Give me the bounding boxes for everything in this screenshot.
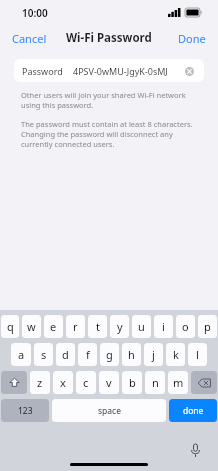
- button[interactable]: s: [34, 343, 53, 366]
- staticText: v: [106, 375, 112, 390]
- button[interactable]: q: [1, 315, 19, 338]
- button[interactable]: Cancel: [0, 27, 59, 50]
- staticText: g: [106, 347, 113, 362]
- button[interactable]: t: [88, 315, 107, 338]
- button[interactable]: m: [168, 371, 188, 394]
- staticText: 10:00: [22, 6, 48, 20]
- staticText: j: [152, 347, 155, 362]
- staticText: done: [183, 405, 204, 417]
- button[interactable]: c: [76, 371, 96, 394]
- button[interactable]: w: [22, 315, 41, 338]
- button[interactable]: o: [176, 315, 195, 338]
- staticText: b: [129, 375, 136, 390]
- staticText: m: [173, 375, 184, 390]
- staticText: Done: [178, 31, 206, 46]
- staticText: z: [37, 375, 43, 390]
- staticText: s: [41, 347, 47, 362]
- staticText: w: [27, 319, 36, 334]
- staticText: 123: [18, 405, 33, 417]
- staticText: i: [162, 319, 165, 334]
- button[interactable]: k: [166, 343, 185, 366]
- staticText: n: [152, 375, 159, 390]
- button[interactable]: Clear text: [182, 64, 196, 78]
- staticText: 4PSV-0wMU-JgyK-0sMJ: [73, 65, 168, 77]
- button[interactable]: y: [110, 315, 129, 338]
- staticText: x: [60, 375, 66, 390]
- staticText: t: [96, 319, 100, 334]
- staticText: The password must contain at least 8 cha…: [21, 119, 197, 149]
- staticText: Other users will join your shared Wi-Fi …: [21, 90, 197, 110]
- button[interactable]: Password: [14, 59, 204, 82]
- button[interactable]: i: [154, 315, 173, 338]
- staticText: Wi-Fi Password: [66, 30, 152, 46]
- button[interactable]: Done: [166, 27, 218, 50]
- button[interactable]: f: [78, 343, 97, 366]
- button[interactable]: Shift: [1, 371, 27, 394]
- staticText: p: [204, 319, 211, 334]
- staticText: Password: [22, 65, 63, 77]
- button[interactable]: z: [30, 371, 50, 394]
- staticText: r: [73, 319, 78, 334]
- staticText: a: [18, 347, 25, 362]
- button[interactable]: h: [122, 343, 141, 366]
- button[interactable]: Dictation: [186, 441, 204, 459]
- button[interactable]: n: [145, 371, 165, 394]
- staticText: l: [196, 347, 199, 362]
- staticText: d: [62, 347, 69, 362]
- staticText: y: [117, 319, 123, 334]
- button[interactable]: r: [66, 315, 85, 338]
- button[interactable]: a: [11, 343, 31, 366]
- staticText: o: [182, 319, 189, 334]
- button[interactable]: j: [144, 343, 163, 366]
- button[interactable]: x: [53, 371, 73, 394]
- button[interactable]: u: [132, 315, 151, 338]
- staticText: f: [86, 347, 90, 362]
- staticText: space: [98, 405, 121, 417]
- staticText: Cancel: [12, 31, 47, 46]
- button[interactable]: 123: [1, 399, 49, 422]
- button[interactable]: g: [100, 343, 119, 366]
- staticText: q: [7, 319, 14, 334]
- button[interactable]: Backspace: [191, 371, 217, 394]
- staticText: u: [138, 319, 145, 334]
- button[interactable]: v: [99, 371, 119, 394]
- staticText: k: [173, 347, 179, 362]
- button[interactable]: e: [44, 315, 63, 338]
- button[interactable]: d: [56, 343, 75, 366]
- staticText: h: [128, 347, 135, 362]
- staticText: e: [50, 319, 57, 334]
- button[interactable]: b: [122, 371, 142, 394]
- button[interactable]: done: [169, 399, 217, 422]
- button[interactable]: l: [188, 343, 207, 366]
- button[interactable]: space: [52, 399, 166, 422]
- staticText: c: [83, 375, 89, 390]
- button[interactable]: p: [198, 315, 217, 338]
